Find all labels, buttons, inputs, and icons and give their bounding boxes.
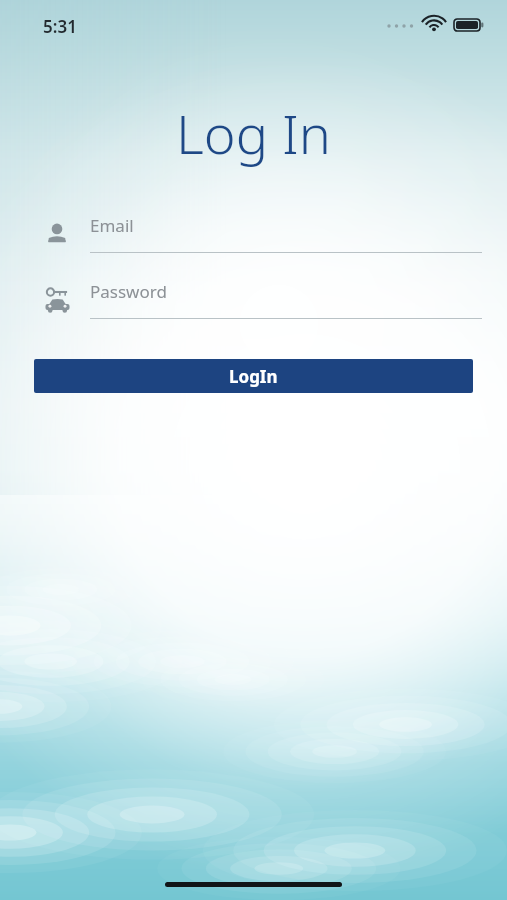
staticText: LogIn — [229, 365, 278, 388]
staticText: 5:31 — [43, 15, 77, 38]
button[interactable]: LogIn — [34, 359, 473, 393]
other: Password — [44, 287, 71, 314]
staticText: Password — [90, 280, 167, 303]
button[interactable]: Password — [42, 280, 482, 319]
staticText: Log In — [0, 96, 507, 170]
button[interactable]: Account — [42, 214, 482, 253]
staticText: Email — [90, 214, 134, 237]
other: Account — [44, 221, 70, 247]
